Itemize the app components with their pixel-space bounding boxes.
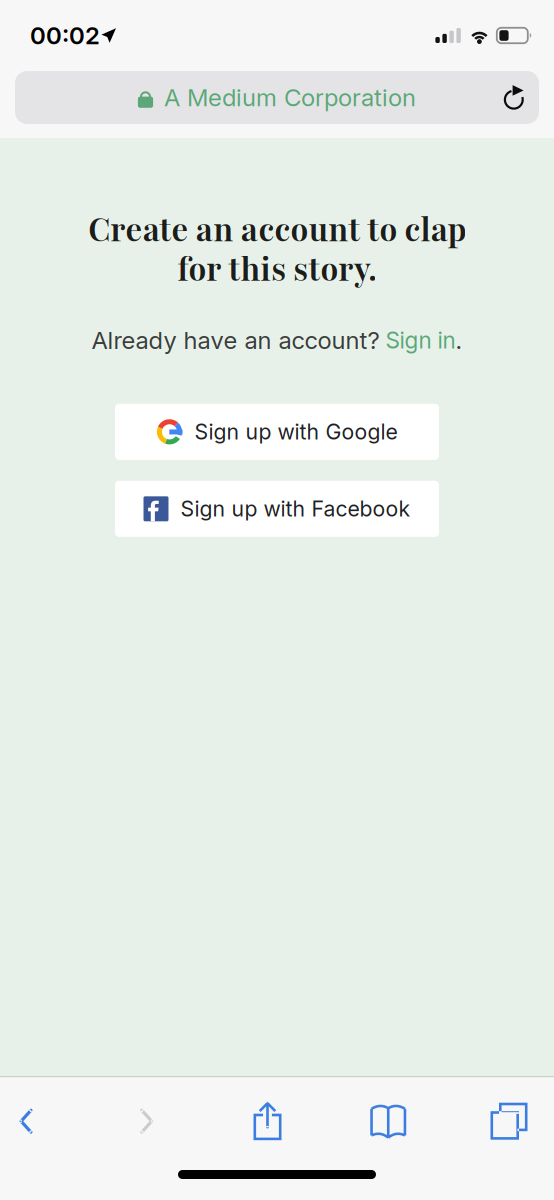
staticText: A Medium Corporation	[164, 83, 416, 112]
button[interactable]: Sign in	[379, 327, 455, 354]
button[interactable]: Bookmarks	[357, 1093, 419, 1149]
button[interactable]: Sign up with Facebook	[115, 481, 439, 537]
staticText: Already have an account?	[91, 326, 379, 355]
staticText: Sign up with Facebook	[180, 496, 410, 522]
button[interactable]: Back	[0, 1093, 57, 1149]
button[interactable]: Reload page	[489, 71, 539, 124]
button[interactable]: Forward	[116, 1093, 178, 1149]
button[interactable]: Share	[236, 1093, 298, 1149]
staticText: Sign in	[379, 327, 455, 354]
staticText: .	[455, 326, 462, 355]
staticText: Create an account to clap for this story…	[88, 207, 466, 293]
button[interactable]: Tabs	[478, 1093, 540, 1149]
button[interactable]: Sign up with Google	[115, 404, 439, 460]
button[interactable]: A Medium Corporation	[15, 71, 539, 124]
staticText: 00:02	[30, 21, 100, 50]
staticText: Sign up with Google	[194, 419, 397, 445]
